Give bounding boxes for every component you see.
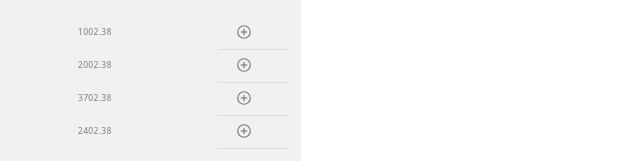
button[interactable]: 1002.38 <box>0 19 301 52</box>
button[interactable]: Add <box>235 118 301 144</box>
button[interactable]: 3702.38 <box>0 85 301 118</box>
button[interactable]: Add <box>235 85 301 111</box>
staticText: 2002.38 <box>78 59 112 71</box>
staticText: 3702.38 <box>78 92 112 104</box>
button[interactable]: 2402.38 <box>0 118 301 151</box>
staticText: 1002.38 <box>78 26 112 38</box>
button[interactable]: Add <box>235 52 301 78</box>
button[interactable]: Add <box>235 19 301 45</box>
staticText: 2402.38 <box>78 125 112 137</box>
button[interactable]: 2002.38 <box>0 52 301 85</box>
